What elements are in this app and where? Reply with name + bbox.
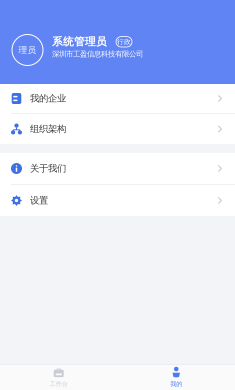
staticText: 深圳市工盈信息科技有限公司 [52,49,143,59]
staticText: 工作台 [50,380,68,388]
button[interactable]: 组织架构 [0,114,235,144]
staticText: 理员 [18,44,36,55]
staticText: 系统管理员 [52,35,107,48]
staticText: 我的企业 [30,93,66,104]
button[interactable]: 关于我们 [0,153,235,185]
staticText: 组织架构 [30,123,66,135]
button[interactable]: 设置 [0,185,235,216]
staticText: 设置 [30,195,48,206]
staticText: 关于我们 [30,163,66,174]
staticText: 我的 [170,380,182,388]
staticText: 行政 [117,38,131,46]
button[interactable]: 我的 [117,365,235,390]
button[interactable]: 工作台 [0,365,117,390]
button[interactable]: 我的企业 [0,84,235,114]
